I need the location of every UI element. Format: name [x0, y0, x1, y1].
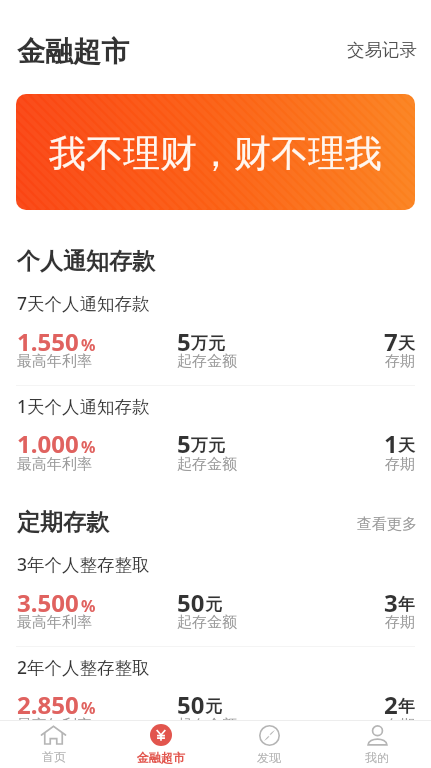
- button[interactable]: 金融超市: [17, 34, 129, 69]
- staticText: 交易记录: [347, 39, 417, 61]
- button[interactable]: 查看更多: [357, 515, 417, 534]
- staticText: 1.550: [17, 325, 79, 358]
- staticText: 5: [177, 325, 191, 358]
- other: Financial market: [150, 724, 172, 746]
- button[interactable]: [0, 286, 431, 385]
- staticText: %: [81, 436, 96, 458]
- staticText: 年: [398, 696, 415, 717]
- staticText: 最高年利率: [17, 613, 92, 632]
- staticText: 起存金额: [177, 613, 237, 632]
- staticText: 元: [205, 594, 222, 615]
- staticText: 1天个人通知存款: [17, 394, 150, 418]
- staticText: 查看更多: [357, 515, 417, 534]
- staticText: 发现: [257, 750, 281, 765]
- staticText: 存期: [385, 455, 415, 474]
- staticText: 万元: [191, 435, 225, 456]
- button[interactable]: Profile: [323, 721, 431, 768]
- staticText: 1: [384, 427, 398, 460]
- staticText: 1.000: [17, 427, 79, 460]
- button[interactable]: Discover: [215, 721, 323, 768]
- staticText: %: [81, 334, 96, 356]
- staticText: 7天个人通知存款: [17, 291, 150, 315]
- button[interactable]: 交易记录: [347, 39, 417, 61]
- staticText: 5: [177, 427, 191, 460]
- staticText: 2年个人整存整取: [17, 655, 150, 679]
- staticText: 我的: [365, 750, 389, 765]
- button[interactable]: [0, 389, 431, 488]
- staticText: %: [81, 595, 96, 617]
- staticText: 万元: [191, 333, 225, 354]
- staticText: 最高年利率: [17, 352, 92, 371]
- other: Discover: [259, 725, 280, 746]
- button[interactable]: [0, 650, 431, 749]
- staticText: 3.500: [17, 586, 79, 619]
- button[interactable]: 我不理财，财不理我: [16, 94, 415, 210]
- staticText: 2.850: [17, 688, 79, 721]
- staticText: 50: [177, 586, 205, 619]
- staticText: 天: [398, 333, 415, 354]
- staticText: 元: [205, 696, 222, 717]
- staticText: 年: [398, 594, 415, 615]
- staticText: 金融超市: [17, 34, 129, 69]
- staticText: 起存金额: [177, 352, 237, 371]
- button[interactable]: Home: [0, 721, 107, 768]
- staticText: 3年个人整存整取: [17, 552, 150, 576]
- other: Home: [41, 725, 66, 745]
- staticText: 50: [177, 688, 205, 721]
- button[interactable]: [0, 547, 431, 646]
- staticText: 首页: [42, 749, 66, 764]
- staticText: 存期: [385, 716, 415, 735]
- staticText: 2: [384, 688, 398, 721]
- staticText: 存期: [385, 613, 415, 632]
- staticText: 3: [384, 586, 398, 619]
- staticText: 定期存款: [17, 508, 109, 537]
- staticText: 最高年利率: [17, 716, 92, 735]
- staticText: 存期: [385, 352, 415, 371]
- staticText: 我不理财，财不理我: [49, 130, 382, 177]
- staticText: 起存金额: [177, 716, 237, 735]
- button[interactable]: Financial market: [107, 721, 215, 768]
- staticText: 金融超市: [137, 750, 185, 765]
- staticText: 7: [384, 325, 398, 358]
- staticText: 个人通知存款: [17, 247, 155, 276]
- other: Profile: [367, 725, 388, 746]
- staticText: 天: [398, 435, 415, 456]
- staticText: 最高年利率: [17, 455, 92, 474]
- staticText: 起存金额: [177, 455, 237, 474]
- staticText: %: [81, 697, 96, 719]
